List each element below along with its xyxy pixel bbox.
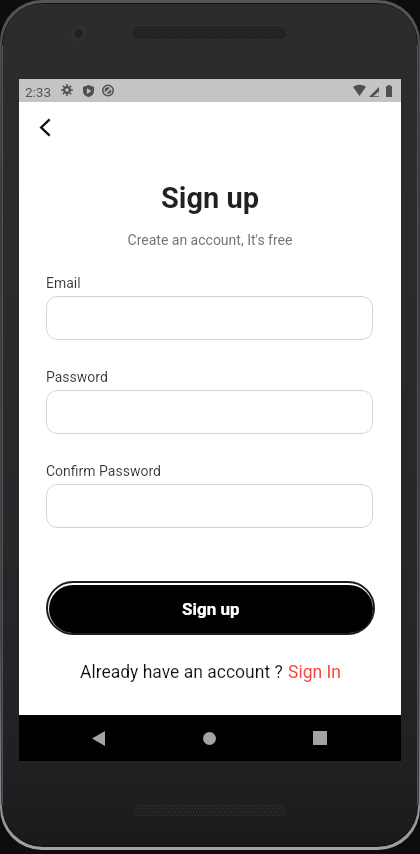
staticText: Password xyxy=(46,369,108,385)
button[interactable]: Sign up xyxy=(49,585,373,633)
button[interactable]: Recent apps xyxy=(296,715,344,761)
button[interactable] xyxy=(46,296,373,340)
button[interactable] xyxy=(46,390,373,434)
staticText: Sign up xyxy=(182,599,240,619)
button[interactable] xyxy=(46,484,373,528)
staticText: Already have an account ? xyxy=(80,662,288,683)
button[interactable]: Back xyxy=(28,111,61,144)
staticText: 2:33 xyxy=(25,84,52,100)
staticText: Sign In xyxy=(288,662,341,683)
button[interactable]: Sign In xyxy=(288,662,341,683)
staticText: Create an account, It's free xyxy=(19,232,401,248)
button[interactable]: Home xyxy=(185,715,233,761)
button[interactable]: Back xyxy=(74,715,122,761)
staticText: Sign up xyxy=(19,181,401,215)
staticText: Confirm Password xyxy=(46,463,161,479)
staticText: Email xyxy=(46,275,81,291)
